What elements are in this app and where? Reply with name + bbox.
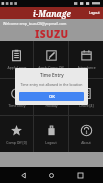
staticText: Time Entry	[8, 103, 26, 108]
staticText: Logout	[45, 140, 57, 145]
staticText: ISUZU	[35, 27, 69, 41]
staticText: About	[81, 140, 91, 145]
button[interactable]: Back	[18, 170, 29, 181]
staticText: i-Manage	[33, 8, 71, 19]
staticText: Leave [4]	[79, 103, 94, 108]
staticText: Attendance	[77, 65, 96, 70]
staticText: Apply Comp-Off	[38, 65, 64, 70]
button[interactable]: Comp Off	[0, 116, 33, 152]
staticText: Time entry not allowed in the location	[20, 82, 83, 87]
button[interactable]: Recents	[75, 170, 86, 181]
staticText: OK	[49, 94, 55, 100]
staticText: Time Entry	[40, 72, 64, 78]
staticText: Holiday	[45, 103, 58, 108]
button[interactable]: OK	[19, 92, 84, 101]
button[interactable]: Leave	[69, 79, 103, 115]
staticText: Comp Off [0]	[6, 140, 27, 145]
button[interactable]: Logout	[86, 9, 103, 17]
button[interactable]: Apply Comp-Off	[34, 41, 68, 78]
button[interactable]: Home	[46, 170, 57, 181]
button[interactable]: Attendance	[69, 41, 103, 78]
staticText: Logout	[89, 11, 100, 15]
staticText: Apply Leave	[7, 65, 27, 70]
staticText: Welcome emp_isuzu03@yopmail.com	[3, 21, 67, 26]
button[interactable]: Logout	[34, 116, 68, 152]
button[interactable]: Apply Leave	[0, 41, 33, 78]
button[interactable]: Holiday	[34, 79, 68, 115]
button[interactable]: About	[69, 116, 103, 152]
button[interactable]: Time Entry	[0, 79, 33, 115]
